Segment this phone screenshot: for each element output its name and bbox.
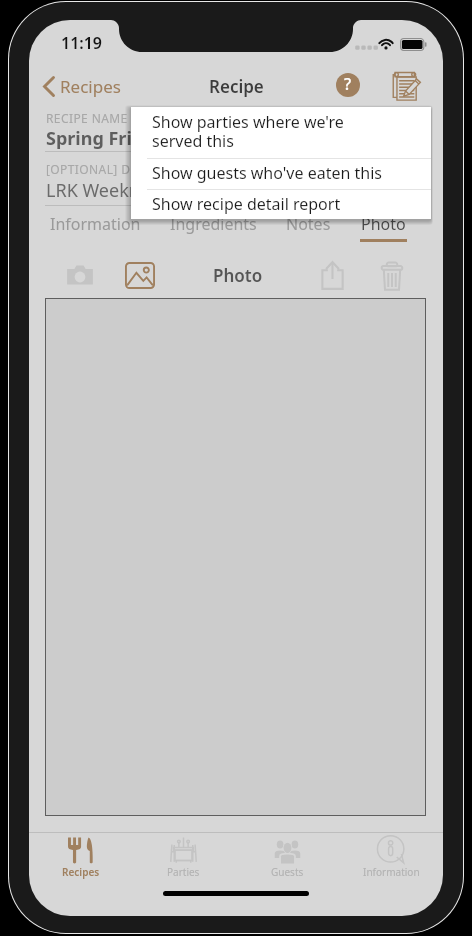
staticText: Parties — [167, 865, 200, 879]
button[interactable]: Recipes — [29, 70, 131, 103]
button[interactable]: Show guests who've eaten this — [131, 159, 431, 189]
staticText: Show guests who've eaten this — [152, 162, 382, 184]
staticText: Information — [363, 865, 420, 879]
button[interactable]: Ingredients — [170, 213, 257, 243]
button[interactable]: Information — [50, 213, 141, 243]
button[interactable]: Show recipe detail report — [131, 190, 431, 219]
button[interactable]: Notes — [286, 213, 331, 243]
staticText: Show recipe detail report — [152, 193, 341, 215]
button[interactable]: Delete — [378, 259, 406, 294]
staticText: Guests — [271, 865, 304, 879]
staticText: Information — [50, 213, 141, 235]
staticText: [OPTIONAL] DESCRIPTION — [46, 161, 204, 177]
staticText: Show parties where we're served this — [152, 111, 344, 152]
button[interactable]: Choose photo — [122, 259, 158, 292]
button[interactable]: Take photo — [63, 262, 96, 287]
staticText: RECIPE NAME — [46, 110, 128, 126]
button[interactable]: Help — [332, 69, 364, 101]
button[interactable]: Information — [339, 833, 443, 882]
staticText: Ingredients — [170, 213, 257, 235]
button[interactable]: Photo — [45, 298, 426, 816]
button[interactable]: Show parties where we're served this — [131, 107, 431, 158]
staticText: ? — [344, 73, 352, 95]
staticText: Photo — [361, 213, 406, 235]
button[interactable]: Guests — [235, 833, 339, 882]
button[interactable]: Recipes — [29, 833, 132, 882]
staticText: Spring Frittata — [46, 126, 177, 151]
button[interactable]: Photo — [360, 213, 407, 243]
button[interactable]: Parties — [132, 833, 235, 882]
staticText: Recipe — [209, 75, 264, 98]
staticText: LRK Weeknight — [46, 178, 174, 203]
staticText: Recipes — [62, 865, 100, 879]
staticText: Recipes — [60, 75, 121, 98]
button[interactable]: Edit recipe — [387, 66, 427, 106]
staticText: Photo — [213, 264, 263, 287]
button[interactable]: Share — [318, 258, 347, 293]
staticText: Notes — [286, 213, 331, 235]
staticText: 11:19 — [61, 32, 103, 54]
